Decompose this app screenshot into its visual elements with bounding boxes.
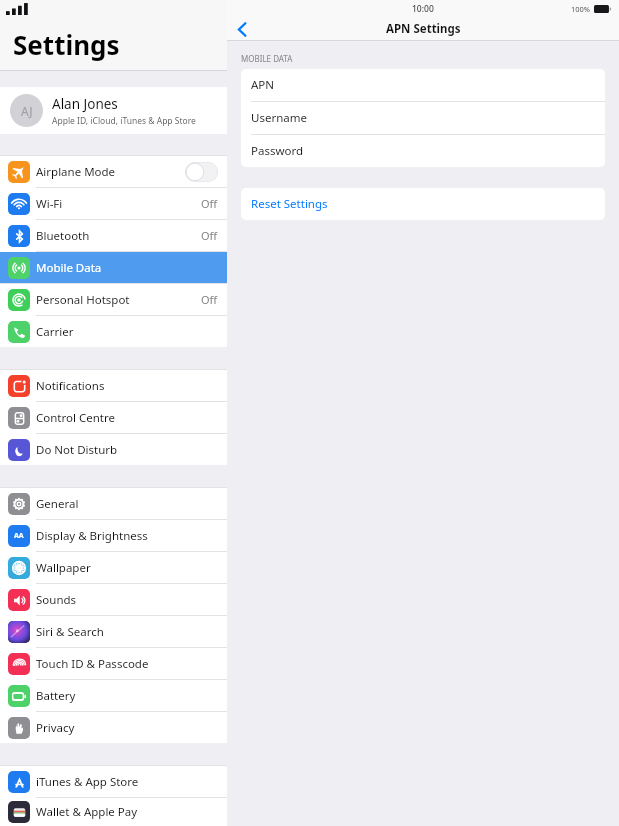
button[interactable]: APN xyxy=(241,69,605,101)
staticText: Alan Jones xyxy=(52,95,118,113)
staticText: Apple ID, iCloud, iTunes & App Store xyxy=(52,115,196,127)
staticText: Username xyxy=(251,110,307,126)
button[interactable]: iTunes & App Store xyxy=(0,766,227,797)
staticText: Battery xyxy=(36,688,218,704)
staticText: Wallet & Apple Pay xyxy=(36,804,218,820)
staticText: Sounds xyxy=(36,592,218,608)
button[interactable]: Username xyxy=(241,102,605,134)
staticText: APN Settings xyxy=(386,21,461,37)
button[interactable]: Reset Settings xyxy=(241,188,605,220)
staticText: AJ xyxy=(21,103,33,119)
button[interactable]: Password xyxy=(241,135,605,167)
staticText: Carrier xyxy=(36,324,218,340)
staticText: Password xyxy=(251,143,304,159)
staticText: Personal Hotspot xyxy=(36,292,201,308)
button[interactable]: Wallet & Apple Pay xyxy=(0,798,227,826)
button[interactable]: Wi-Fi xyxy=(0,188,227,219)
staticText: iTunes & App Store xyxy=(36,774,218,790)
staticText: AA xyxy=(14,531,24,541)
button[interactable]: Do Not Disturb xyxy=(0,434,227,465)
staticText: Off xyxy=(201,228,218,243)
staticText: Wallpaper xyxy=(36,560,218,576)
staticText: Wi-Fi xyxy=(36,196,201,212)
staticText: MOBILE DATA xyxy=(241,53,293,64)
button[interactable]: AA xyxy=(0,520,227,551)
staticText: Settings xyxy=(13,27,120,62)
button[interactable]: Control Centre xyxy=(0,402,227,433)
staticText: Bluetooth xyxy=(36,228,201,244)
button[interactable]: Bluetooth xyxy=(0,220,227,251)
button[interactable]: Notifications xyxy=(0,370,227,401)
button[interactable]: Mobile Data xyxy=(0,252,227,283)
staticText: 10:00 xyxy=(412,3,434,15)
button[interactable]: General xyxy=(0,488,227,519)
staticText: Off xyxy=(201,292,218,307)
button[interactable]: Privacy xyxy=(0,712,227,743)
staticText: Do Not Disturb xyxy=(36,442,218,458)
staticText: Siri & Search xyxy=(36,624,218,640)
staticText: Privacy xyxy=(36,720,218,736)
button[interactable]: Siri & Search xyxy=(0,616,227,647)
button[interactable]: Battery xyxy=(0,680,227,711)
staticText: Reset Settings xyxy=(251,196,328,212)
staticText: APN xyxy=(251,77,275,93)
button[interactable]: Touch ID & Passcode xyxy=(0,648,227,679)
staticText: Mobile Data xyxy=(36,260,218,276)
staticText: Display & Brightness xyxy=(36,528,218,544)
staticText: General xyxy=(36,496,218,512)
button[interactable]: Wallpaper xyxy=(0,552,227,583)
button[interactable]: AJ xyxy=(0,87,227,134)
staticText: Airplane Mode xyxy=(36,164,185,180)
staticText: Touch ID & Passcode xyxy=(36,656,218,672)
staticText: Notifications xyxy=(36,378,218,394)
button[interactable]: Personal Hotspot xyxy=(0,284,227,315)
button[interactable]: Back xyxy=(227,18,257,40)
button[interactable]: Carrier xyxy=(0,316,227,347)
staticText: 100% xyxy=(571,4,591,14)
button[interactable]: Airplane Mode xyxy=(0,156,227,187)
button[interactable]: Sounds xyxy=(0,584,227,615)
staticText: Control Centre xyxy=(36,410,218,426)
staticText: Off xyxy=(201,196,218,211)
